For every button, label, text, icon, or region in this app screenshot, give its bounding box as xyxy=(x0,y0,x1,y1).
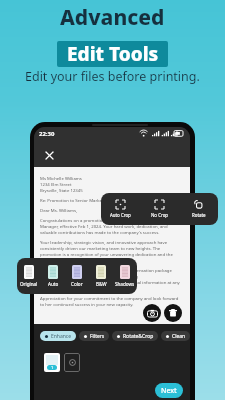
staticText: Enhance xyxy=(51,333,72,340)
staticText: point, please. xyxy=(40,285,68,291)
button[interactable]: Retake xyxy=(143,304,161,322)
staticText: Color xyxy=(71,281,83,287)
staticText: days. If you have any questions or need … xyxy=(40,279,180,285)
staticText: Re: Promotion to Senior Marketing Manage… xyxy=(40,197,130,203)
staticText: Edit your files before printing. xyxy=(25,68,200,85)
staticText: 22:30 xyxy=(39,130,55,138)
staticText: 1234 Elm Street xyxy=(40,181,72,187)
button[interactable]: Auto Crop xyxy=(101,193,140,225)
button[interactable]: Filters xyxy=(79,331,109,341)
staticText: B&W xyxy=(96,281,107,287)
staticText: Shadows xyxy=(115,281,135,287)
staticText: No Crop xyxy=(151,212,168,218)
button[interactable]: Enhance xyxy=(40,331,76,341)
staticText: to her continued success in your new cap… xyxy=(40,301,134,307)
button[interactable]: B&W xyxy=(89,258,113,294)
staticText: Auto xyxy=(48,281,59,287)
staticText: consistently driven our marketing team t… xyxy=(40,245,161,251)
staticText: Auto Crop xyxy=(110,212,131,218)
button[interactable]: Delete xyxy=(164,304,182,322)
staticText: Rotate xyxy=(192,212,206,218)
button[interactable]: Clean xyxy=(161,331,190,341)
button[interactable]: Rotate xyxy=(179,193,218,225)
staticText: Congratulations on a promotion to the po… xyxy=(40,217,177,223)
staticText: Rotate&Crop xyxy=(123,333,154,340)
staticText: Dear Ms. Williams, xyxy=(40,207,78,213)
staticText: Next xyxy=(161,386,177,396)
staticText: Brysville, State 12345 xyxy=(40,187,83,193)
staticText: Original xyxy=(20,281,38,287)
staticText: valuable contributions has made to the c… xyxy=(40,229,160,235)
staticText: and other details will be discussed in t… xyxy=(40,273,138,279)
button[interactable]: Color xyxy=(65,258,89,294)
staticText: promotion is a recognition of your unwav… xyxy=(40,251,173,257)
button[interactable]: Next xyxy=(155,383,183,398)
button[interactable]: Page 1 xyxy=(44,353,60,372)
staticText: Advanced xyxy=(60,3,165,32)
staticText: We are confident that you will continue … xyxy=(40,267,172,273)
staticText: 1 xyxy=(51,365,54,370)
staticText: Filters xyxy=(90,333,105,340)
button[interactable]: Rotate&Crop xyxy=(112,331,158,341)
button[interactable]: Original xyxy=(17,258,41,294)
staticText: Your leadership, strategic vision, and i… xyxy=(40,239,168,245)
staticText: exceptional results you have achieved. xyxy=(40,257,118,263)
button[interactable]: Close xyxy=(42,148,56,162)
staticText: Manager, effective Feb 1, 2024. Your har… xyxy=(40,223,168,229)
staticText: Appreciation for your commitment to the … xyxy=(40,295,179,301)
button[interactable]: No Crop xyxy=(140,193,179,225)
staticText: Edit Tools xyxy=(67,41,159,67)
button[interactable]: Shadows xyxy=(113,258,137,294)
button[interactable]: Auto xyxy=(41,258,65,294)
staticText: Ms Michelle Williams xyxy=(40,175,82,181)
staticText: Clean xyxy=(172,333,186,340)
button[interactable]: Add page xyxy=(64,353,80,372)
